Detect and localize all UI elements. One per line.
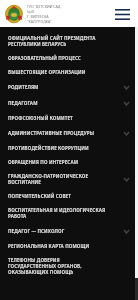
staticText: ГОСУДАРСТВЕННЫХ ОРГАНОВ, xyxy=(8,263,82,269)
button[interactable]: ПРОФСОЮЗНЫЙ КОМИТЕТ xyxy=(0,111,138,125)
staticText: ВОСПИТАТЕЛЬНАЯ И ИДЕОЛОГИЧЕСКАЯ xyxy=(8,207,106,213)
button[interactable]: АДМИНИСТРАТИВНЫЕ ПРОЦЕДУРЫ xyxy=(0,125,138,141)
button[interactable]: ВЫШЕСТОЯЩИЕ ОРГАНИЗАЦИИ xyxy=(0,65,138,79)
button[interactable]: ОБРАЗОВАТЕЛЬНЫЙ ПРОЦЕСС xyxy=(0,51,138,65)
button[interactable]: РЕГИОНАЛЬНАЯ КАРТА ПОМОЩИ xyxy=(0,239,138,253)
staticText: "КАЛІГРОДКА" xyxy=(27,19,52,24)
staticText: ВЫШЕСТОЯЩИЕ ОРГАНИЗАЦИИ xyxy=(8,69,86,75)
button[interactable]: ВОСПИТАТЕЛЬНАЯ И ИДЕОЛОГИЧЕСКАЯ xyxy=(0,203,138,223)
button[interactable]: Menu xyxy=(111,3,133,25)
staticText: РЕГИОНАЛЬНАЯ КАРТА ПОМОЩИ xyxy=(8,243,90,249)
button[interactable]: ОФИЦИАЛЬНЫЙ САЙТ ПРЕЗИДЕНТА xyxy=(0,31,138,51)
staticText: ОКАЗЫВАЮЩИХ ПОМОЩЬ xyxy=(8,269,74,275)
button[interactable]: ПЕДАГОГАМ xyxy=(0,95,138,111)
staticText: ГУО "ДЕТСКИЙ САД xyxy=(27,4,61,9)
staticText: ПОПЕЧИТЕЛЬСКИЙ СОВЕТ xyxy=(8,193,71,199)
staticText: ГРАЖДАНСКО-ПАТРИОТИЧЕСКОЕ xyxy=(8,173,89,179)
staticText: РАБОТА xyxy=(8,213,27,219)
staticText: ВОСПИТАНИЕ xyxy=(8,179,41,185)
staticText: ОБРАЩЕНИЯ ПО ИНТЕРЕСАМ xyxy=(8,159,79,165)
button[interactable]: ГУО "ДЕТСКИЙ САД xyxy=(27,4,111,24)
staticText: РОДИТЕЛЯМ xyxy=(8,84,39,90)
button[interactable]: ПРОТИВОДЕЙСТВИЕ КОРРУПЦИИ xyxy=(0,141,138,155)
button[interactable]: ПЕДАГОГ — ПСИХОЛОГ xyxy=(0,223,138,239)
staticText: ПЕДАГОГ — ПСИХОЛОГ xyxy=(8,228,65,234)
staticText: ТЕЛЕФОНЫ ДОВЕРИЯ xyxy=(8,257,60,263)
button[interactable]: РОДИТЕЛЯМ xyxy=(0,79,138,95)
staticText: РЕСПУБЛИКИ БЕЛАРУСЬ xyxy=(8,41,67,47)
staticText: №41 xyxy=(27,9,35,14)
staticText: ПЕДАГОГАМ xyxy=(8,100,38,106)
button[interactable]: Home xyxy=(5,5,23,23)
staticText: ПРОТИВОДЕЙСТВИЕ КОРРУПЦИИ xyxy=(8,145,89,151)
staticText: ПРОФСОЮЗНЫЙ КОМИТЕТ xyxy=(8,115,73,121)
staticText: Г. ВИТЕБСКА xyxy=(27,14,49,19)
staticText: ОБРАЗОВАТЕЛЬНЫЙ ПРОЦЕСС xyxy=(8,55,81,61)
button[interactable]: ТЕЛЕФОНЫ ДОВЕРИЯ xyxy=(0,253,138,279)
button[interactable]: ПОПЕЧИТЕЛЬСКИЙ СОВЕТ xyxy=(0,189,138,203)
staticText: ОФИЦИАЛЬНЫЙ САЙТ ПРЕЗИДЕНТА xyxy=(8,35,96,41)
staticText: АДМИНИСТРАТИВНЫЕ ПРОЦЕДУРЫ xyxy=(8,130,95,136)
button[interactable]: ГРАЖДАНСКО-ПАТРИОТИЧЕСКОЕ xyxy=(0,169,138,189)
button[interactable]: ОБРАЩЕНИЯ ПО ИНТЕРЕСАМ xyxy=(0,155,138,169)
